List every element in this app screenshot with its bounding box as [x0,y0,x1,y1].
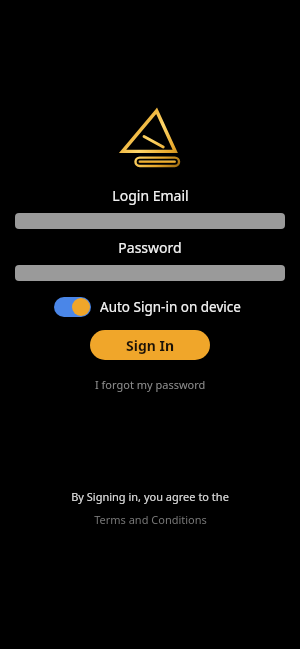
button[interactable]: Terms and Conditions [86,510,215,529]
staticText: I forgot my password [95,377,206,392]
staticText: By Signing in, you agree to the [71,489,229,504]
button[interactable]: Auto Sign-in on device toggle [54,297,300,317]
button[interactable]: Auto Sign-in on device toggle [54,297,91,317]
staticText: Password [118,238,182,257]
button[interactable] [15,265,285,281]
staticText: Terms and Conditions [94,512,207,527]
button[interactable]: I forgot my password [87,374,214,395]
staticText: Sign In [126,336,175,355]
staticText: Auto Sign-in on device [100,298,241,316]
button[interactable] [15,213,285,229]
button[interactable]: Sign In [90,330,210,360]
other: App logo [117,108,183,170]
staticText: Login Email [112,186,189,205]
